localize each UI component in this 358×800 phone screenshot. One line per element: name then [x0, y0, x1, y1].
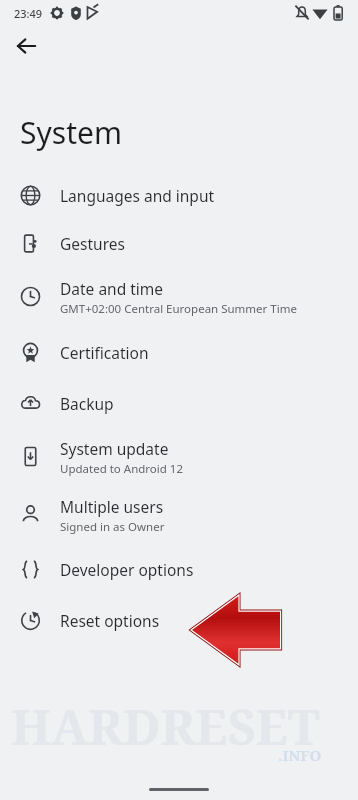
staticText: Certification [60, 342, 149, 363]
staticText: System update [60, 438, 169, 459]
button[interactable]: Backup [0, 379, 358, 427]
staticText: .INFO [278, 745, 322, 765]
button[interactable]: Date and time [0, 267, 358, 325]
staticText: Date and time [60, 278, 164, 299]
button[interactable]: Developer options [0, 543, 358, 595]
button[interactable]: Languages and input [0, 171, 358, 219]
staticText: Updated to Android 12 [60, 461, 183, 477]
staticText: Gestures [60, 233, 125, 254]
staticText: Multiple users [60, 496, 164, 517]
button[interactable]: Certification [0, 325, 358, 379]
staticText: HARDRESET [11, 693, 320, 760]
staticText: System [20, 112, 122, 153]
button[interactable]: Back [6, 26, 46, 66]
button[interactable]: Reset options [0, 595, 358, 645]
staticText: Languages and input [60, 185, 215, 206]
staticText: Backup [60, 393, 114, 414]
button[interactable]: System update [0, 427, 358, 485]
staticText: GMT+02:00 Central European Summer Time [60, 301, 297, 317]
staticText: 23:49 [14, 6, 43, 21]
staticText: Reset options [60, 610, 160, 631]
button[interactable]: Gestures [0, 219, 358, 267]
staticText: Signed in as Owner [60, 519, 165, 535]
staticText: Developer options [60, 559, 194, 580]
button[interactable]: Multiple users [0, 485, 358, 543]
